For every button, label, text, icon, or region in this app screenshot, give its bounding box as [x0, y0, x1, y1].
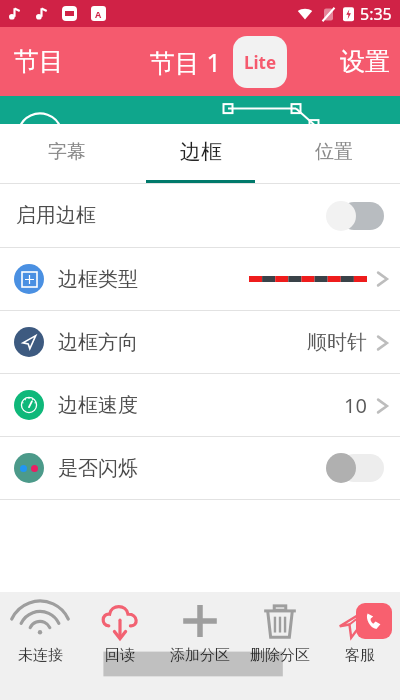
staticText: 添加分区 — [170, 646, 230, 665]
staticText: 顺时针 — [307, 330, 367, 355]
staticText: 未连接 — [18, 646, 63, 665]
button[interactable]: 边框 — [134, 124, 267, 180]
staticText: 边框速度 — [58, 393, 138, 418]
staticText: 边框方向 — [58, 330, 138, 355]
button[interactable]: 边框方向 — [0, 311, 400, 373]
other: 客服 — [338, 599, 382, 643]
button[interactable]: 客服 — [320, 592, 400, 700]
button[interactable]: 回读 — [80, 592, 160, 700]
button[interactable]: 是否闪烁 — [0, 437, 400, 499]
button[interactable]: 删除分区 — [240, 592, 320, 700]
other: 回读 — [100, 601, 140, 641]
button[interactable]: 位置 — [267, 124, 400, 180]
staticText: 删除分区 — [250, 646, 310, 665]
button[interactable]: 启用边框 — [0, 184, 400, 247]
staticText: 位置 — [315, 140, 353, 164]
button[interactable]: 字幕 — [0, 124, 134, 180]
staticText: 回读 — [105, 646, 135, 665]
staticText: A — [95, 8, 102, 20]
staticText: 10 — [344, 392, 367, 419]
button[interactable]: Lite — [233, 36, 287, 88]
other: 删除分区 — [262, 603, 298, 639]
button[interactable]: 添加分区 — [160, 592, 240, 700]
button[interactable]: 边框类型 — [0, 248, 400, 310]
staticText: 字幕 — [48, 140, 86, 164]
staticText: Lite — [244, 51, 277, 74]
staticText: 是否闪烁 — [58, 456, 138, 481]
button[interactable]: 设置 — [340, 46, 390, 77]
staticText: 启用边框 — [16, 203, 96, 228]
button[interactable]: 边框速度 — [0, 374, 400, 436]
other: 添加分区 — [180, 601, 220, 641]
staticText: 边框类型 — [58, 267, 138, 292]
other: 未连接 — [20, 601, 60, 641]
staticText: 5:35 — [360, 3, 392, 25]
staticText: 边框 — [180, 139, 222, 165]
staticText: 客服 — [345, 646, 375, 665]
button[interactable]: 节目 — [14, 46, 64, 77]
staticText: 节目 1 — [150, 45, 221, 79]
button[interactable]: 未连接 — [0, 592, 80, 700]
